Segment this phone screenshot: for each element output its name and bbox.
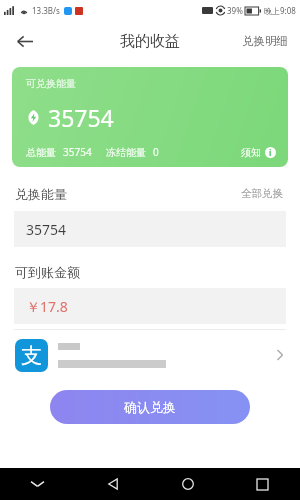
button[interactable]: 支: [0, 330, 300, 380]
staticText: 35754: [26, 220, 67, 239]
staticText: 须知: [241, 146, 261, 159]
other: Select account: [275, 350, 285, 360]
button[interactable]: ￥17.8: [14, 288, 286, 324]
staticText: 39%: [227, 5, 243, 16]
button[interactable]: 确认兑换: [50, 390, 250, 424]
staticText: 可兑换能量: [26, 77, 76, 90]
staticText: 兑换明细: [242, 34, 288, 48]
staticText: ￥17.8: [26, 297, 68, 316]
button[interactable]: 兑换明细: [230, 24, 300, 58]
button[interactable]: Hide keyboard: [0, 468, 75, 500]
button[interactable]: Home: [150, 468, 225, 500]
staticText: 我的收益: [120, 32, 180, 51]
button[interactable]: 可兑换能量: [12, 67, 288, 167]
button[interactable]: Back: [75, 468, 150, 500]
staticText: 晚上9:08: [264, 5, 296, 16]
staticText: 确认兑换: [124, 399, 176, 415]
button[interactable]: 全部兑换: [237, 183, 287, 204]
staticText: 0: [153, 145, 159, 159]
staticText: 支: [21, 343, 42, 369]
button[interactable]: 须知: [241, 146, 276, 159]
staticText: 13.3B/s: [32, 5, 60, 16]
button[interactable]: Back: [8, 25, 40, 57]
staticText: 总能量: [26, 146, 56, 159]
staticText: 全部兑换: [241, 187, 283, 200]
button[interactable]: 35754: [14, 211, 286, 247]
staticText: 冻结能量: [106, 146, 146, 159]
staticText: 35754: [48, 102, 114, 133]
staticText: 35754: [63, 145, 92, 159]
button[interactable]: Recents: [225, 468, 300, 500]
staticText: i: [269, 147, 272, 158]
staticText: 可到账金额: [15, 264, 80, 280]
staticText: 兑换能量: [15, 186, 67, 202]
